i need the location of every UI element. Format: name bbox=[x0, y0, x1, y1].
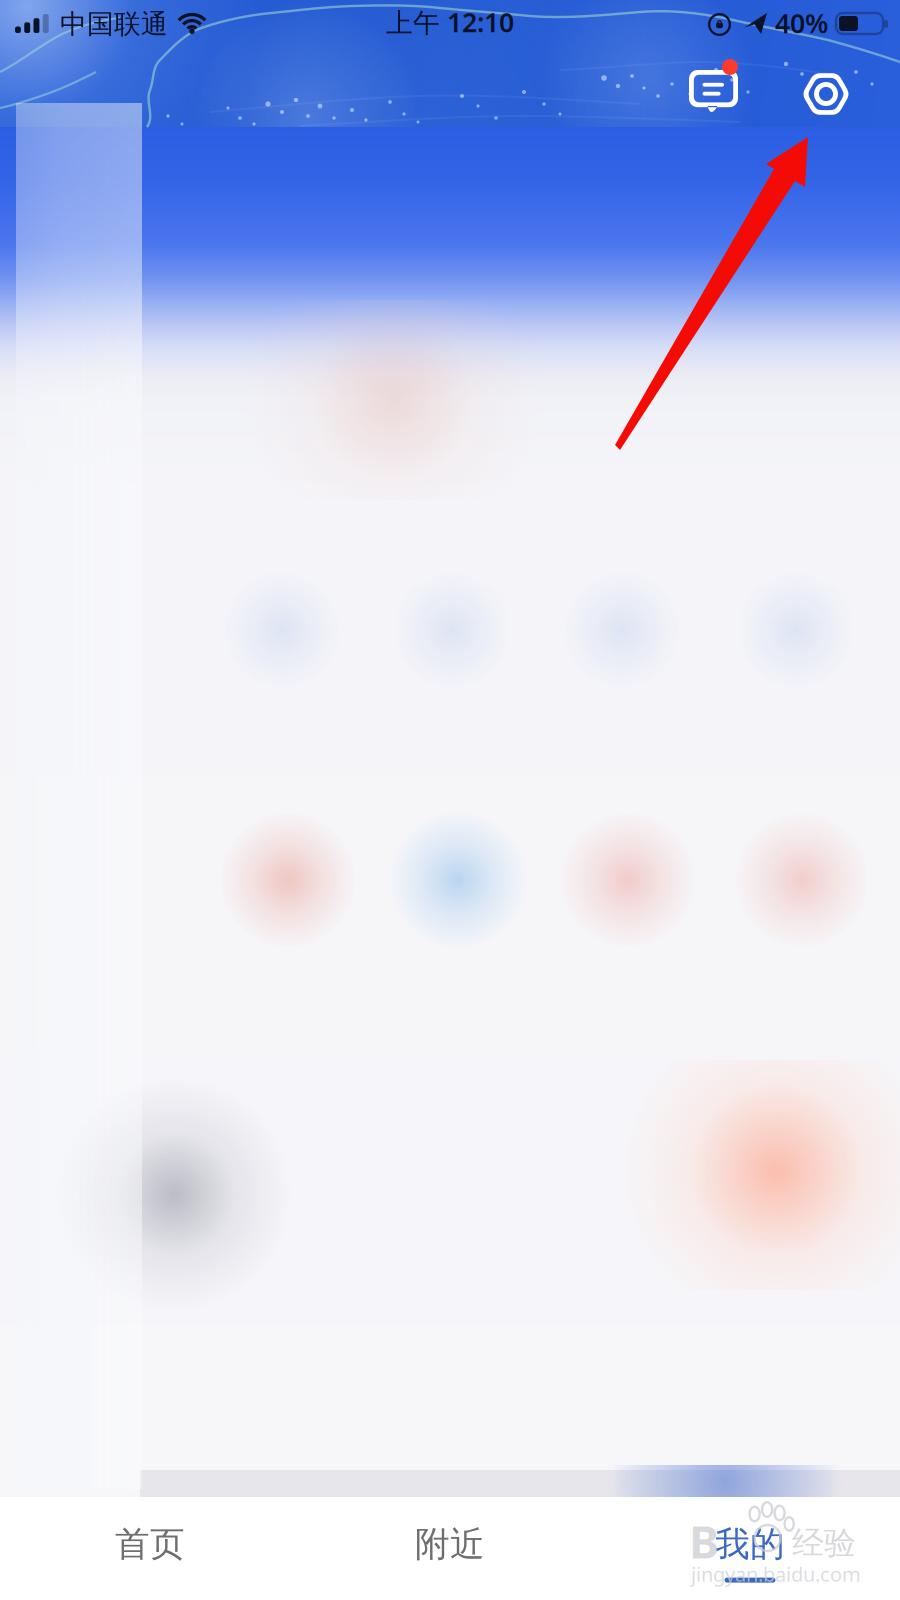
button[interactable]: 首页 bbox=[0, 1497, 300, 1600]
staticText: 经验 bbox=[792, 1523, 856, 1563]
button[interactable]: 我的 bbox=[600, 1497, 900, 1600]
staticText: 中国联通 bbox=[60, 8, 168, 40]
staticText: 附近 bbox=[415, 1523, 485, 1566]
staticText: B bbox=[689, 1511, 719, 1571]
staticText: 40% bbox=[775, 5, 828, 41]
button[interactable]: 附近 bbox=[300, 1497, 600, 1600]
staticText: 上午 12:10 bbox=[386, 4, 514, 40]
staticText: 首页 bbox=[115, 1523, 185, 1566]
button[interactable]: 消息 bbox=[676, 56, 752, 132]
button[interactable]: 设置 bbox=[788, 56, 864, 132]
staticText: jingyan.baidu.com bbox=[691, 1561, 861, 1587]
staticText: 我的 bbox=[715, 1523, 785, 1566]
